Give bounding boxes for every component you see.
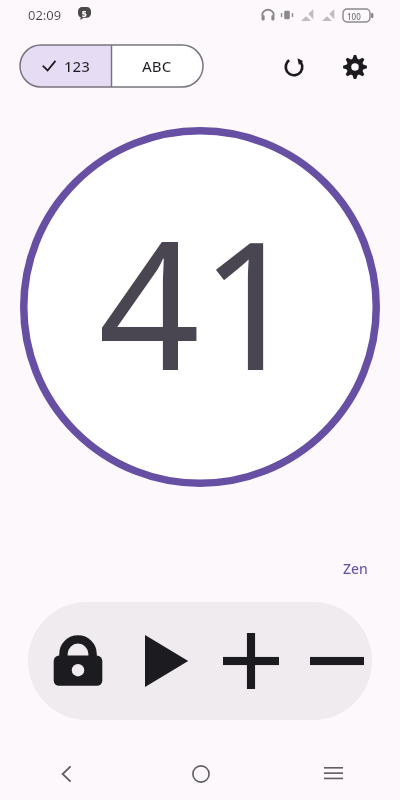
- button[interactable]: 123: [20, 45, 111, 87]
- staticText: 5: [82, 8, 87, 19]
- button[interactable]: Home: [134, 748, 267, 800]
- button[interactable]: Settings: [336, 48, 374, 86]
- button[interactable]: Lock: [38, 621, 118, 701]
- staticText: 100: [347, 11, 361, 22]
- staticText: 41: [98, 180, 302, 422]
- button[interactable]: Zen: [320, 556, 368, 580]
- button[interactable]: Decrease: [298, 622, 372, 700]
- button[interactable]: Increase: [212, 622, 290, 700]
- button[interactable]: Back: [0, 748, 134, 800]
- button[interactable]: Play: [126, 622, 204, 700]
- staticText: ABC: [142, 56, 172, 76]
- button[interactable]: Recents: [267, 748, 400, 800]
- button[interactable]: Refresh: [275, 48, 313, 86]
- staticText: Zen: [343, 559, 368, 578]
- staticText: 123: [64, 56, 90, 76]
- button[interactable]: ABC: [111, 45, 203, 87]
- staticText: 02:09: [28, 6, 62, 24]
